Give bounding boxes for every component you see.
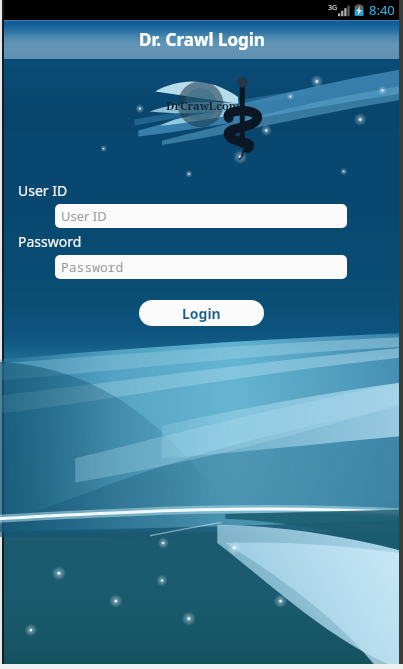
staticText: Dr. Crawl Login: [139, 28, 265, 51]
staticText: User ID: [61, 207, 107, 225]
staticText: DrCrawl.com: [166, 98, 240, 113]
button[interactable]: Password: [55, 255, 347, 279]
button[interactable]: Login: [139, 300, 264, 326]
staticText: User ID: [18, 181, 68, 200]
staticText: Login: [182, 304, 221, 323]
staticText: 3G: [328, 3, 338, 13]
staticText: 8:40: [369, 1, 395, 19]
staticText: Password: [61, 258, 124, 276]
staticText: Password: [18, 232, 82, 251]
button[interactable]: User ID: [55, 204, 347, 228]
